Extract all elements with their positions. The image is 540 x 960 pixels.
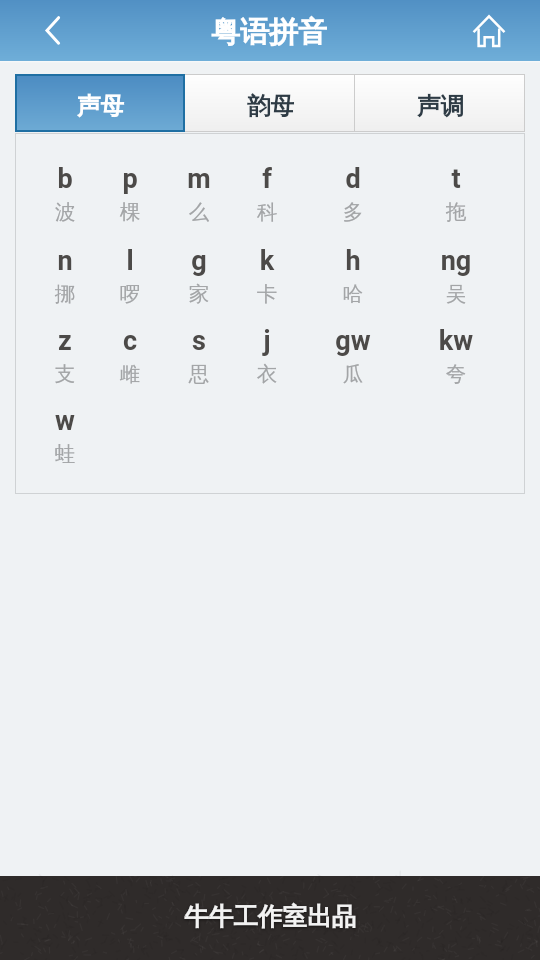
staticText: p (90, 163, 170, 195)
staticText: 么 (159, 199, 239, 225)
staticText: gw (313, 325, 393, 357)
button[interactable]: w (25, 405, 105, 481)
staticText: 声调 (417, 91, 464, 121)
staticText: 哈 (313, 281, 393, 307)
button[interactable]: b (25, 163, 105, 239)
staticText: t (416, 163, 496, 195)
staticText: 衣 (227, 361, 307, 387)
button[interactable]: f (227, 163, 307, 239)
staticText: b (25, 163, 105, 195)
staticText: l (90, 245, 170, 277)
staticText: m (159, 163, 239, 195)
staticText: 声母 (77, 91, 124, 121)
button[interactable]: Back (18, 3, 74, 59)
button[interactable]: 韵母 (185, 74, 355, 132)
staticText: 吴 (416, 281, 496, 307)
staticText: 拖 (416, 199, 496, 225)
staticText: k (227, 245, 307, 277)
staticText: 波 (25, 199, 105, 225)
staticText: kw (416, 325, 496, 357)
staticText: d (313, 163, 393, 195)
staticText: w (25, 405, 105, 437)
staticText: 牛牛工作室出品 (184, 901, 357, 932)
staticText: s (159, 325, 239, 357)
staticText: ng (416, 245, 496, 277)
staticText: 韵母 (247, 91, 294, 121)
staticText: g (159, 245, 239, 277)
button[interactable]: c (90, 325, 170, 401)
staticText: j (227, 325, 307, 357)
button[interactable]: gw (313, 325, 393, 401)
button[interactable]: m (159, 163, 239, 239)
staticText: h (313, 245, 393, 277)
staticText: 啰 (90, 281, 170, 307)
staticText: c (90, 325, 170, 357)
button[interactable]: t (416, 163, 496, 239)
button[interactable]: 声调 (355, 74, 525, 132)
staticText: 家 (159, 281, 239, 307)
staticText: 支 (25, 361, 105, 387)
staticText: 夸 (416, 361, 496, 387)
button[interactable]: g (159, 245, 239, 321)
button[interactable]: z (25, 325, 105, 401)
button[interactable]: kw (416, 325, 496, 401)
staticText: 多 (313, 199, 393, 225)
staticText: n (25, 245, 105, 277)
staticText: 卡 (227, 281, 307, 307)
button[interactable]: ng (416, 245, 496, 321)
staticText: 棵 (90, 199, 170, 225)
staticText: 蛙 (25, 441, 105, 467)
staticText: 粤语拼音 (211, 14, 327, 51)
staticText: 科 (227, 199, 307, 225)
button[interactable]: j (227, 325, 307, 401)
button[interactable]: l (90, 245, 170, 321)
button[interactable]: k (227, 245, 307, 321)
button[interactable]: Home (461, 3, 517, 59)
button[interactable]: n (25, 245, 105, 321)
button[interactable]: h (313, 245, 393, 321)
button[interactable]: d (313, 163, 393, 239)
button[interactable]: p (90, 163, 170, 239)
staticText: 挪 (25, 281, 105, 307)
button[interactable]: 声母 (17, 76, 183, 130)
staticText: f (227, 163, 307, 195)
staticText: 雌 (90, 361, 170, 387)
staticText: 思 (159, 361, 239, 387)
staticText: z (25, 325, 105, 357)
staticText: 瓜 (313, 361, 393, 387)
button[interactable]: s (159, 325, 239, 401)
